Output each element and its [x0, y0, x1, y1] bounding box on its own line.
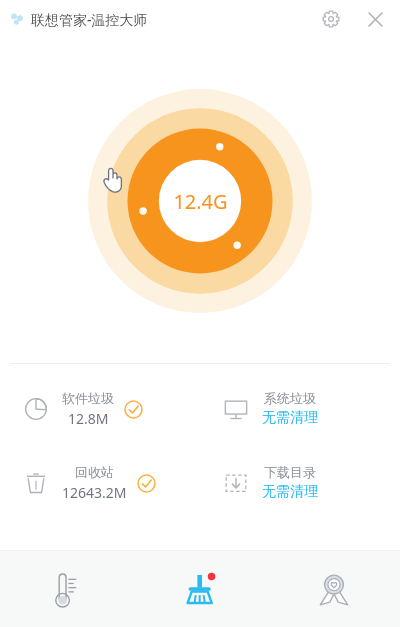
- button[interactable]: Clean: [134, 551, 267, 627]
- staticText: 系统垃圾: [264, 390, 316, 406]
- button[interactable]: Close: [358, 2, 392, 36]
- button[interactable]: Settings: [314, 2, 348, 36]
- staticText: 软件垃圾: [62, 390, 114, 406]
- staticText: 无需清理: [262, 483, 318, 501]
- button[interactable]: Rewards: [267, 551, 400, 627]
- staticText: 12.4G: [173, 188, 228, 215]
- button[interactable]: 下载目录: [200, 460, 400, 505]
- button[interactable]: 软件垃圾: [0, 386, 200, 432]
- button[interactable]: 回收站: [0, 460, 200, 506]
- staticText: 下载目录: [264, 464, 316, 480]
- staticText: 无需清理: [262, 409, 318, 427]
- button[interactable]: Temperature: [0, 551, 134, 627]
- staticText: 联想管家-温控大师: [31, 10, 148, 29]
- button[interactable]: 系统垃圾: [200, 386, 400, 431]
- staticText: 12643.2M: [62, 483, 127, 502]
- staticText: 回收站: [75, 464, 114, 480]
- staticText: 12.8M: [68, 409, 109, 428]
